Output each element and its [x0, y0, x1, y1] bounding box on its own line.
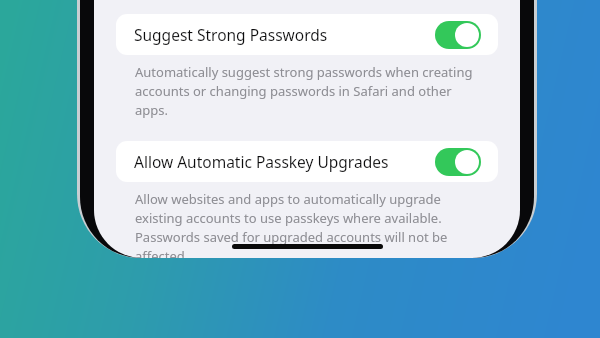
staticText: Automatically suggest strong passwords w… [135, 63, 480, 119]
staticText: Allow Automatic Passkey Upgrades [134, 151, 389, 172]
button[interactable]: Allow Automatic Passkey Upgrades [116, 141, 498, 182]
staticText: Suggest Strong Passwords [134, 24, 328, 45]
staticText: Allow websites and apps to automatically… [135, 190, 480, 258]
button[interactable]: Allow Automatic Passkey Upgrades, on [435, 148, 481, 176]
button[interactable]: Suggest Strong Passwords, on [435, 21, 481, 49]
button[interactable]: Suggest Strong Passwords [116, 14, 498, 55]
